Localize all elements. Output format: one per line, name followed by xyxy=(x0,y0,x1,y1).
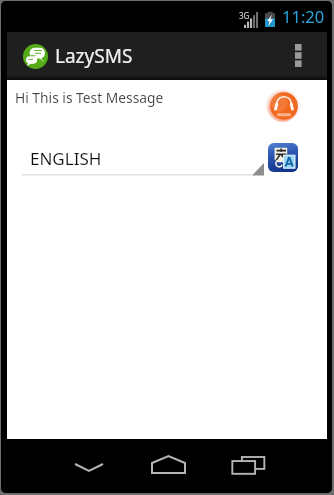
button[interactable]: More options xyxy=(280,34,316,77)
button[interactable]: Home xyxy=(138,443,199,485)
staticText: LazySMS xyxy=(55,43,133,69)
staticText: Hi This is Test Message xyxy=(15,88,164,107)
button[interactable]: ENGLISH xyxy=(22,153,264,177)
staticText: ENGLISH xyxy=(30,147,102,170)
button[interactable]: Translate xyxy=(268,143,298,172)
button[interactable]: Recent apps xyxy=(219,445,278,485)
staticText: 3G xyxy=(239,10,250,21)
button[interactable]: Back xyxy=(59,447,119,487)
staticText: 11:20 xyxy=(282,5,325,27)
button[interactable]: Listen xyxy=(267,89,301,123)
